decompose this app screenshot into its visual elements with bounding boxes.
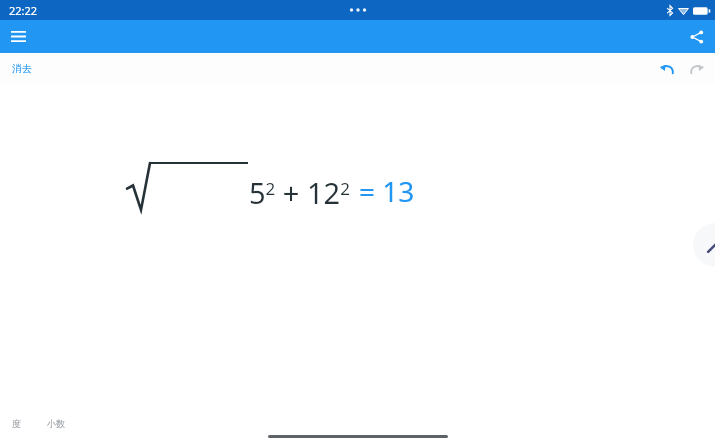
staticText: 度 xyxy=(12,418,21,429)
staticText: 22:22 xyxy=(9,3,38,18)
button[interactable]: Redo xyxy=(682,54,712,84)
button[interactable]: Menu xyxy=(0,20,36,53)
staticText: 消去 xyxy=(12,62,32,75)
button[interactable]: Edit xyxy=(693,223,715,267)
button[interactable]: 小数 xyxy=(41,414,71,433)
button[interactable]: Undo xyxy=(652,54,682,84)
button[interactable]: 度 xyxy=(6,414,27,433)
staticText: 小数 xyxy=(47,418,65,429)
button[interactable]: Share xyxy=(680,20,714,53)
staticText: = 13 xyxy=(359,172,415,210)
button[interactable]: 消去 xyxy=(6,58,38,79)
staticText: 52 + 122 xyxy=(249,173,350,212)
